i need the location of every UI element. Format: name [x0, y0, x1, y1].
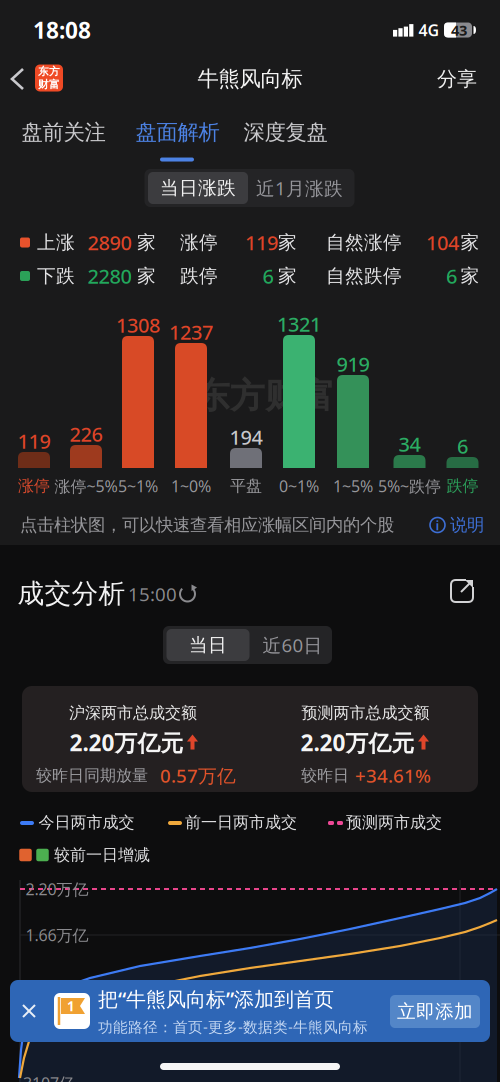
staticText: 今日两市成交 [38, 813, 134, 832]
staticText: 0.57万亿 [160, 763, 236, 788]
staticText: 涨停 [180, 231, 218, 254]
staticText: 分享 [437, 67, 477, 91]
button[interactable]: 近1月涨跌 [256, 176, 343, 200]
button[interactable]: 返回 [7, 66, 31, 92]
staticText: 家 [278, 231, 297, 254]
staticText: 预测两市总成交额 [301, 703, 429, 723]
button[interactable]: 近60日 [262, 633, 322, 657]
staticText: 较昨日同期放量 [36, 766, 148, 785]
staticText: 2.20万亿元 [300, 727, 414, 757]
staticText: 说明 [450, 514, 484, 536]
button[interactable]: 分享 [437, 67, 477, 91]
button[interactable]: 跌停 [446, 457, 478, 468]
button[interactable]: 分享图片 [450, 579, 474, 603]
staticText: 104 [426, 229, 459, 256]
staticText: 1~0% [171, 475, 211, 497]
button[interactable]: 深度复盘 [243, 119, 327, 146]
staticText: 34 [398, 431, 420, 457]
button[interactable]: 盘面解析 [135, 119, 219, 146]
staticText: 深度复盘 [243, 119, 327, 146]
staticText: 近60日 [262, 633, 322, 657]
staticText: 把“牛熊风向标”添加到首页 [98, 985, 334, 1012]
staticText: 1308 [116, 312, 160, 338]
staticText: 财富 [38, 78, 60, 91]
staticText: 4G [418, 19, 439, 41]
staticText: 盘前关注 [21, 119, 105, 146]
staticText: 1 [67, 997, 75, 1015]
staticText: 涨停~5% [54, 475, 117, 497]
staticText: 平盘 [230, 476, 262, 496]
staticText: +34.61% [355, 763, 431, 788]
button[interactable]: 1~5% [337, 375, 369, 468]
staticText: 194 [229, 424, 262, 450]
staticText: 家 [137, 264, 156, 287]
staticText: 当日涨跌 [160, 176, 236, 199]
staticText: 立即添加 [397, 1000, 473, 1023]
staticText: 1~5% [333, 475, 373, 497]
staticText: 当日 [189, 633, 227, 656]
staticText: 自然涨停 [326, 231, 402, 254]
staticText: 6 [446, 263, 457, 289]
staticText: 东方财富 [195, 375, 335, 417]
staticText: 6 [262, 263, 273, 289]
staticText: 点击柱状图，可以快速查看相应涨幅区间内的个股 [20, 514, 394, 536]
staticText: 涨停 [18, 476, 50, 496]
staticText: 5~1% [118, 475, 158, 497]
staticText: 家 [137, 231, 156, 254]
staticText: 牛熊风向标 [197, 66, 302, 92]
button[interactable]: 关闭 [22, 1004, 36, 1018]
button[interactable]: 当日涨跌 [148, 172, 248, 204]
button[interactable]: 盘前关注 [21, 119, 105, 146]
staticText: 2.20万亿元 [69, 727, 183, 757]
staticText: 2890 [87, 229, 131, 256]
button[interactable]: 涨停~5% [70, 445, 102, 468]
button[interactable]: i [430, 514, 484, 536]
staticText: 15:00 [128, 582, 177, 606]
staticText: 上涨 [37, 231, 75, 254]
staticText: 跌停 [446, 476, 478, 496]
staticText: 盘面解析 [135, 119, 219, 146]
staticText: 119 [17, 428, 50, 454]
staticText: 18:08 [33, 15, 91, 45]
staticText: 前一日两市成交 [185, 813, 297, 832]
staticText: 5%~跌停 [378, 475, 441, 497]
staticText: 119 [245, 229, 278, 256]
button[interactable]: 5%~跌停 [393, 455, 425, 468]
staticText: 43 [451, 20, 467, 40]
staticText: 沪深两市总成交额 [69, 703, 197, 723]
staticText: 2.20万亿 [25, 878, 88, 900]
button[interactable]: 平盘 [230, 448, 262, 468]
button[interactable]: 当日 [166, 629, 249, 661]
staticText: 家 [460, 264, 479, 287]
staticText: 1237 [169, 319, 213, 345]
button[interactable]: 涨停 [18, 452, 50, 468]
staticText: 6 [457, 433, 468, 459]
staticText: 近1月涨跌 [256, 176, 343, 200]
staticText: 成交分析 [17, 577, 125, 610]
staticText: 家 [460, 231, 479, 254]
staticText: 2280 [87, 263, 131, 289]
button[interactable]: 1~0% [175, 343, 207, 468]
staticText: 919 [336, 351, 369, 377]
staticText: 1321 [277, 311, 321, 337]
staticText: 功能路径：首页-更多-数据类-牛熊风向标 [98, 1017, 368, 1036]
staticText: 1.66万亿 [25, 924, 88, 946]
staticText: 家 [278, 264, 297, 287]
button[interactable]: 0~1% [283, 335, 315, 468]
button[interactable]: 立即添加 [390, 995, 480, 1028]
button[interactable]: 刷新 [177, 584, 197, 604]
staticText: 3107亿 [23, 1072, 75, 1082]
button[interactable]: 5~1% [122, 336, 154, 468]
staticText: 跌停 [180, 264, 218, 287]
staticText: 较昨日 [301, 766, 349, 785]
staticText: 下跌 [37, 264, 75, 287]
staticText: 预测两市成交 [346, 813, 442, 832]
staticText: i [435, 516, 439, 534]
staticText: 自然跌停 [326, 264, 402, 287]
staticText: 226 [69, 421, 102, 447]
staticText: 0~1% [279, 475, 319, 497]
staticText: 东方 [38, 65, 60, 78]
staticText: 较前一日增减 [54, 845, 150, 865]
